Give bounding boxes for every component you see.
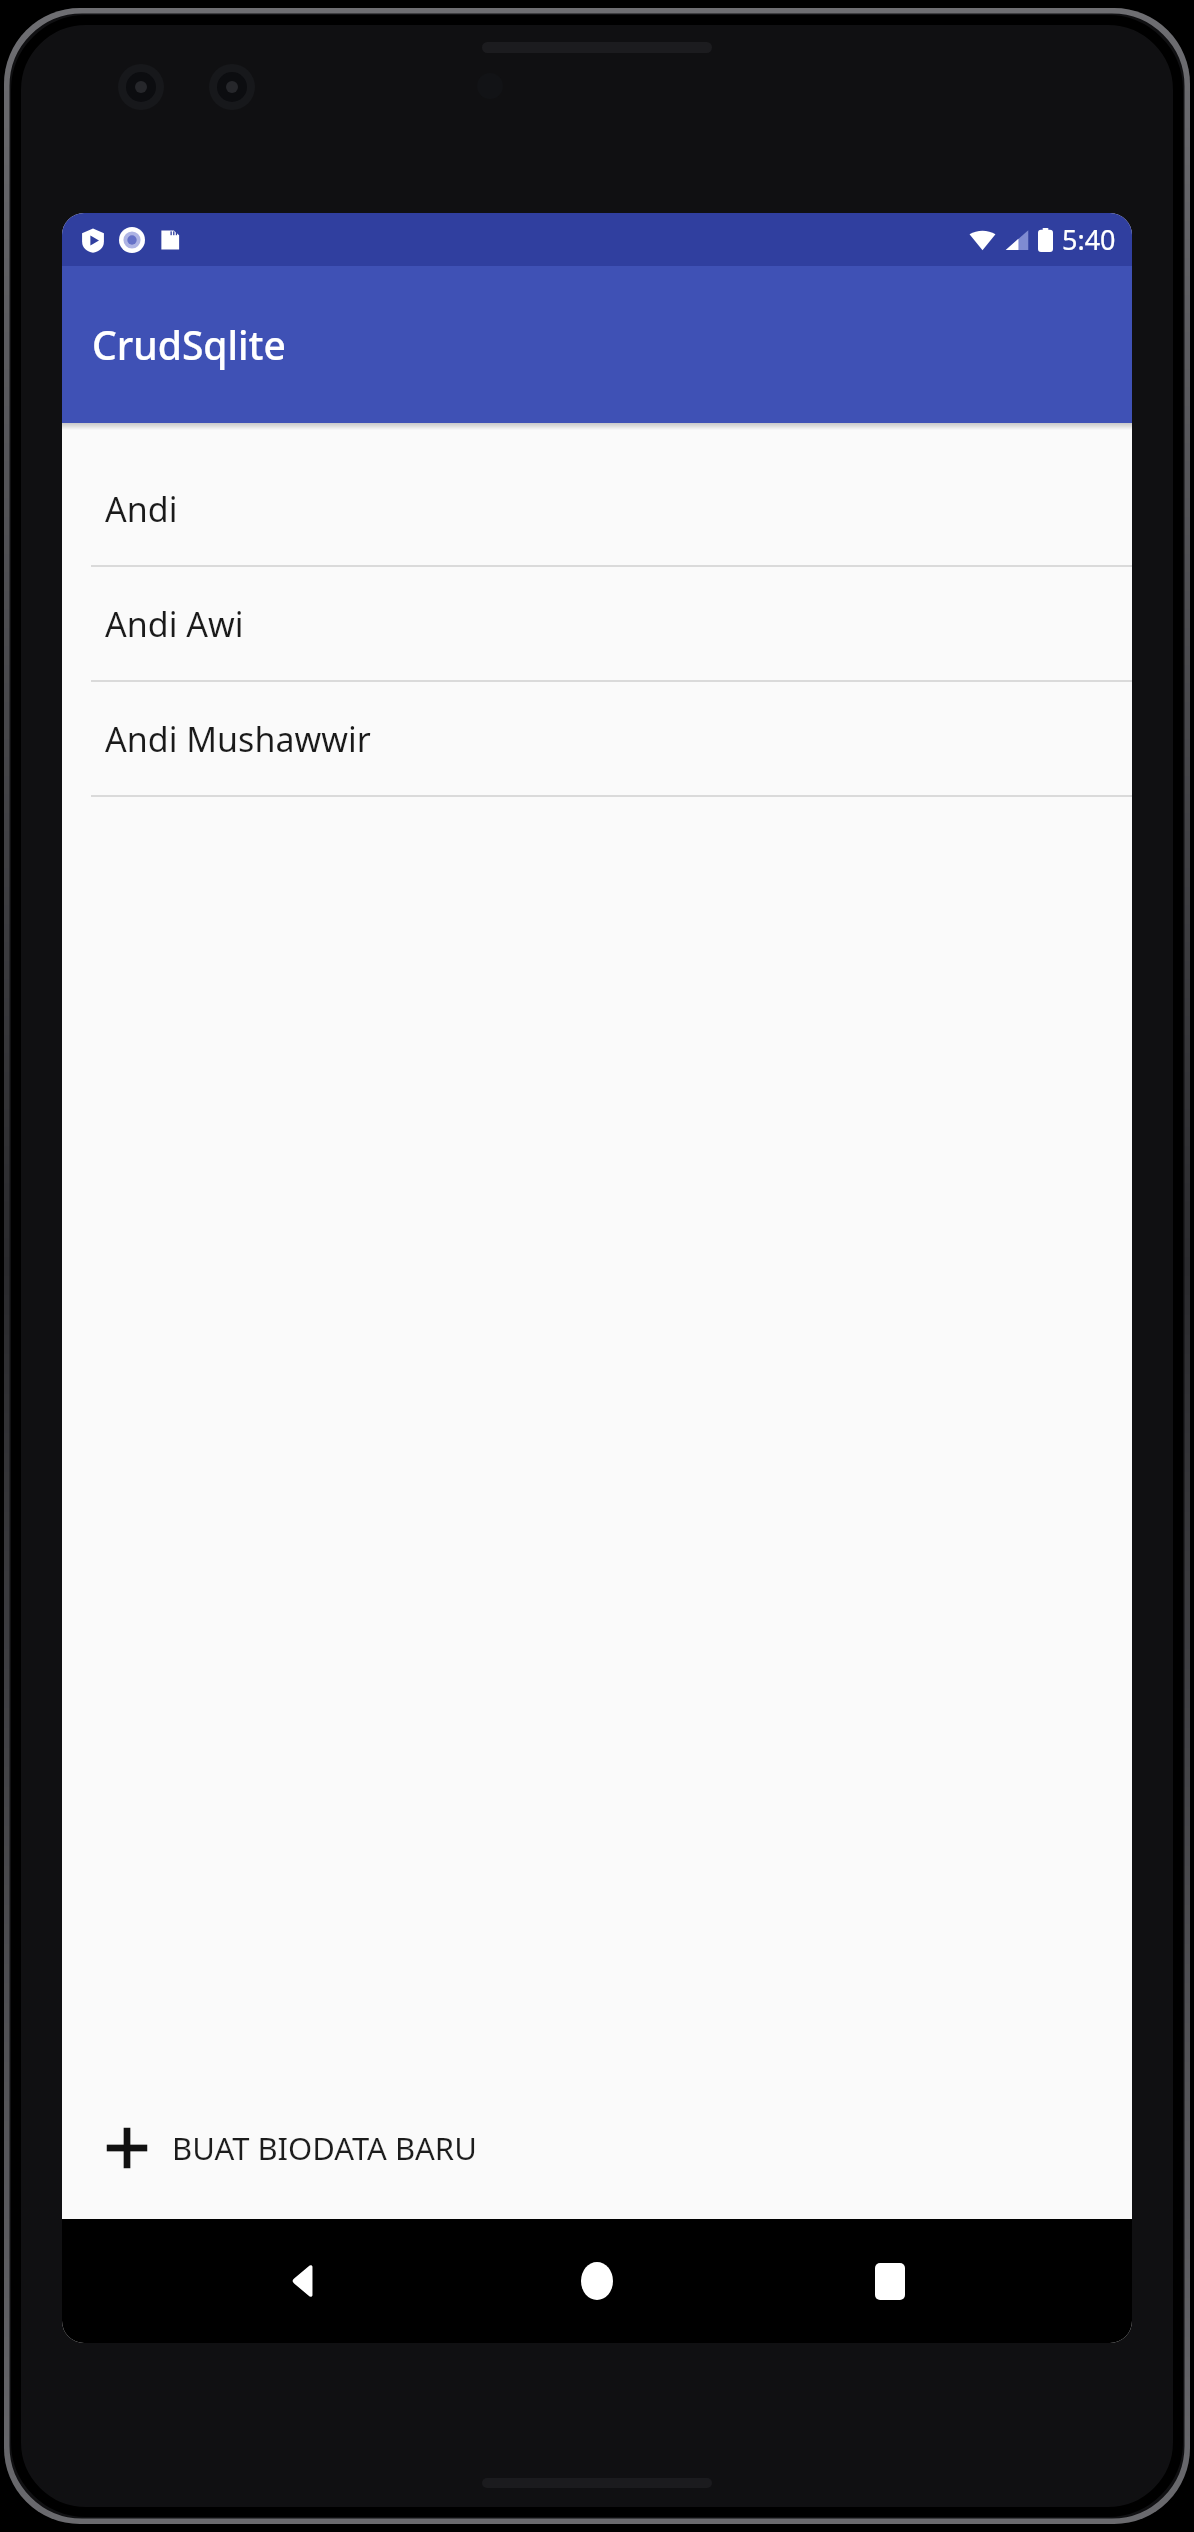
button[interactable]: Back — [255, 2231, 355, 2331]
button[interactable]: Andi Awi — [62, 567, 1132, 682]
button[interactable]: BUAT BIODATA BARU — [90, 2113, 491, 2183]
staticText: Andi Mushawwir — [105, 716, 371, 762]
staticText: Andi — [105, 486, 178, 532]
staticText: CrudSqlite — [92, 318, 286, 371]
staticText: 5:40 — [1062, 221, 1116, 258]
button[interactable]: Andi — [62, 452, 1132, 567]
button[interactable]: Home — [547, 2231, 647, 2331]
staticText: Andi Awi — [105, 601, 244, 647]
staticText: BUAT BIODATA BARU — [172, 2127, 477, 2169]
button[interactable]: Andi Mushawwir — [62, 682, 1132, 797]
button[interactable]: Recent apps — [840, 2231, 940, 2331]
